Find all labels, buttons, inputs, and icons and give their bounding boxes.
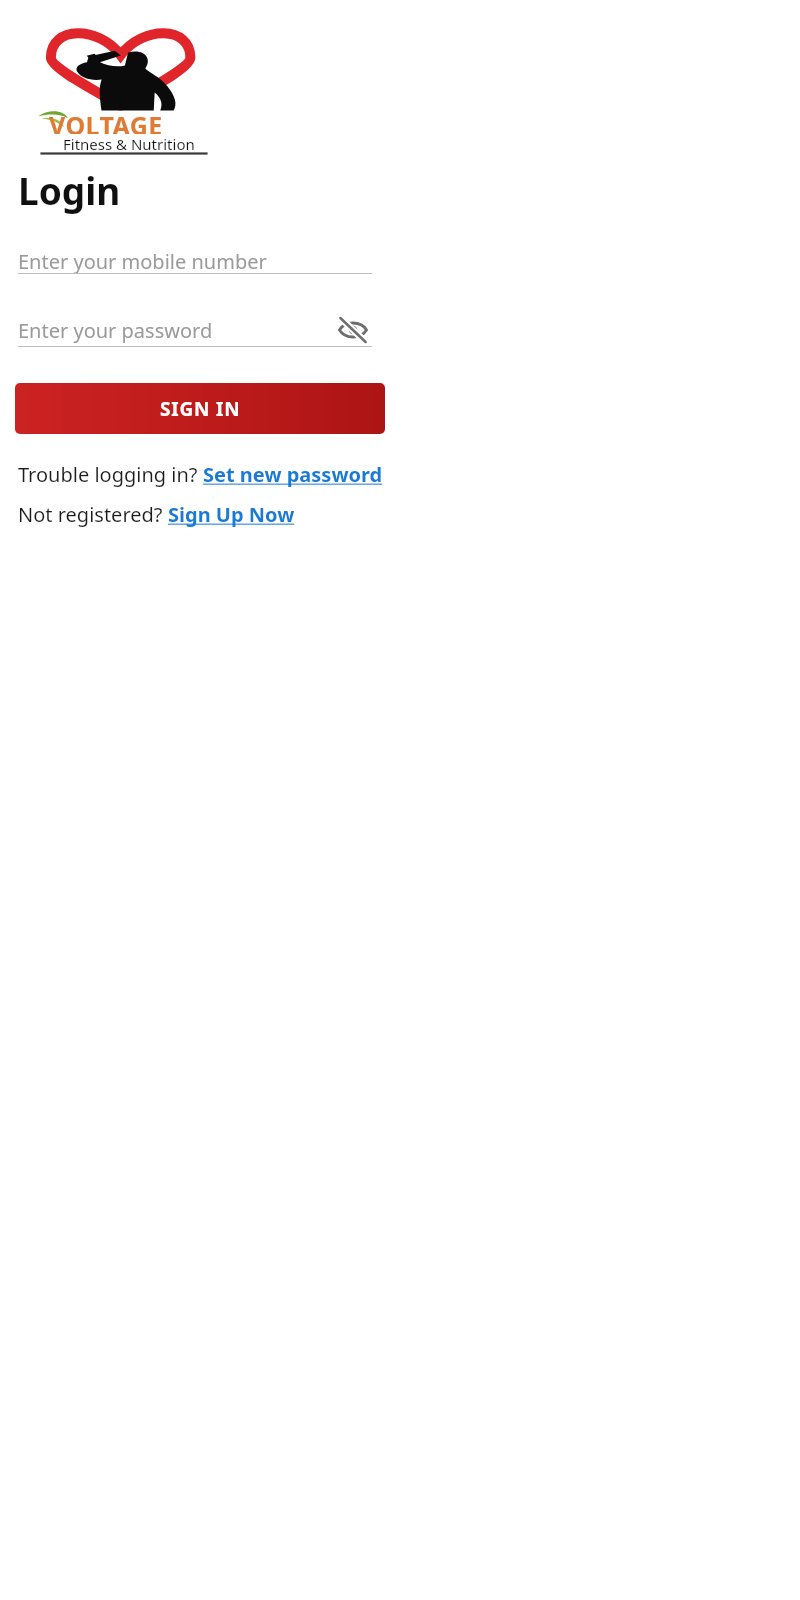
- button[interactable]: Show password: [331, 308, 375, 352]
- staticText: Enter your mobile number: [18, 248, 267, 275]
- staticText: Sign Up Now: [168, 501, 295, 528]
- staticText: Trouble logging in?: [18, 461, 203, 488]
- staticText: Set new password: [203, 461, 383, 488]
- staticText: Fitness & Nutrition: [63, 134, 195, 153]
- staticText: Enter your password: [18, 317, 213, 344]
- button[interactable]: Sign Up Now: [168, 501, 295, 528]
- button[interactable]: Enter your password: [18, 309, 332, 351]
- staticText: Login: [18, 165, 121, 215]
- staticText: VOLTAGE: [49, 108, 163, 134]
- button[interactable]: SIGN IN: [15, 383, 385, 434]
- staticText: SIGN IN: [160, 396, 241, 422]
- button[interactable]: Set new password: [203, 461, 383, 488]
- button[interactable]: Enter your mobile number: [18, 240, 372, 282]
- staticText: Not registered?: [18, 501, 168, 528]
